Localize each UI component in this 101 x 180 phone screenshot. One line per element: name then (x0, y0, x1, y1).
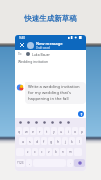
button[interactable]: e (30, 127, 36, 135)
staticText: d (36, 139, 39, 144)
button[interactable]: p (79, 127, 85, 135)
button[interactable]: Keyboard tool (50, 120, 54, 124)
button[interactable]: i (65, 127, 71, 135)
staticText: 9:30 (19, 36, 25, 40)
staticText: t (46, 129, 48, 134)
staticText: Wedding invitation (18, 59, 49, 64)
button[interactable]: s (27, 137, 33, 145)
staticText: 快速生成新草稿 (24, 14, 77, 23)
button[interactable]: Keyboard tool (58, 120, 62, 124)
staticText: c (41, 150, 43, 154)
staticText: ?123 (17, 161, 24, 165)
button[interactable]: Keyboard tool (66, 120, 70, 124)
button[interactable]: Send (78, 111, 84, 117)
button[interactable]: x (32, 148, 38, 156)
button[interactable]: t (44, 127, 50, 135)
staticText: New message (36, 41, 63, 46)
button[interactable]: y (51, 127, 57, 135)
button[interactable]: c (39, 148, 45, 156)
button[interactable]: Keyboard tool (18, 120, 22, 124)
staticText: , (29, 161, 30, 165)
button[interactable]: k (69, 137, 75, 145)
button[interactable]: , (26, 159, 32, 167)
staticText: o (74, 129, 77, 134)
button[interactable]: z (25, 148, 31, 156)
button[interactable]: h (55, 137, 61, 145)
staticText: Write a wedding invitation for my weddin… (28, 84, 83, 102)
button[interactable]: m (67, 148, 73, 156)
button[interactable]: w (23, 127, 29, 135)
staticText: . (70, 161, 71, 165)
button[interactable]: Keyboard tool (26, 120, 30, 124)
button[interactable]: Keyboard tool (42, 120, 46, 124)
staticText: v (48, 150, 50, 154)
button[interactable]: n (60, 148, 66, 156)
staticText: j (65, 139, 66, 144)
button[interactable]: q (16, 127, 22, 135)
staticText: k (71, 139, 73, 144)
button[interactable]: u (58, 127, 64, 135)
staticText: p (81, 129, 84, 134)
button[interactable]: a (19, 137, 26, 145)
staticText: x (34, 150, 36, 154)
staticText: a (22, 139, 24, 144)
staticText: b (55, 150, 57, 154)
staticText: w (25, 129, 28, 134)
staticText: r (39, 129, 41, 134)
button[interactable]: Close (18, 41, 26, 49)
staticText: f (43, 139, 45, 144)
staticText: q (18, 129, 21, 134)
button[interactable]: j (62, 137, 68, 145)
staticText: n (62, 150, 64, 154)
staticText: s (29, 139, 31, 144)
button[interactable]: Wedding invitation (18, 58, 83, 65)
button[interactable]: Keyboard tool (34, 120, 38, 124)
staticText: z (27, 150, 29, 154)
button[interactable]: r (37, 127, 43, 135)
staticText: e (32, 129, 34, 134)
button[interactable]: Send (74, 159, 85, 167)
staticText: m (69, 150, 72, 154)
button[interactable]: v (46, 148, 52, 156)
button[interactable]: f (41, 137, 47, 145)
button[interactable]: g (48, 137, 54, 145)
staticText: l (79, 139, 80, 144)
staticText: i (68, 129, 69, 134)
staticText: y (53, 129, 55, 134)
button[interactable]: To (18, 50, 83, 58)
staticText: u (60, 129, 63, 134)
button[interactable]: l (76, 137, 82, 145)
button[interactable]: d (34, 137, 40, 145)
staticText: Draft saved (36, 46, 50, 50)
staticText: Luka Bauer (32, 52, 50, 57)
button[interactable]: ?123 (16, 159, 25, 167)
staticText: To (18, 52, 22, 56)
button[interactable]: o (72, 127, 78, 135)
button[interactable]: b (53, 148, 59, 156)
staticText: g (50, 139, 53, 144)
staticText: h (57, 139, 60, 144)
